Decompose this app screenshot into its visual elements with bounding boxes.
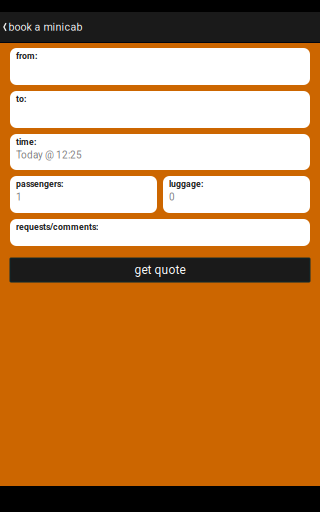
button[interactable]: get quote bbox=[10, 258, 310, 282]
staticText: Today @ 12:25 bbox=[16, 149, 82, 161]
button[interactable]: book a minicab bbox=[0, 12, 320, 42]
button[interactable]: passengers: bbox=[10, 176, 157, 213]
staticText: get quote bbox=[134, 263, 185, 277]
button[interactable]: time: bbox=[10, 134, 310, 170]
staticText: from: bbox=[16, 51, 37, 61]
button[interactable]: from: bbox=[10, 48, 310, 85]
button[interactable]: luggage: bbox=[163, 176, 310, 213]
staticText: to: bbox=[16, 94, 26, 104]
staticText: luggage: bbox=[169, 179, 203, 189]
staticText: requests/comments: bbox=[16, 222, 98, 232]
staticText: passengers: bbox=[16, 179, 63, 189]
staticText: 0 bbox=[169, 191, 175, 203]
button[interactable]: to: bbox=[10, 91, 310, 128]
staticText: 1 bbox=[16, 191, 22, 203]
staticText: time: bbox=[16, 137, 36, 147]
staticText: book a minicab bbox=[8, 21, 82, 33]
button[interactable]: requests/comments: bbox=[10, 219, 310, 246]
